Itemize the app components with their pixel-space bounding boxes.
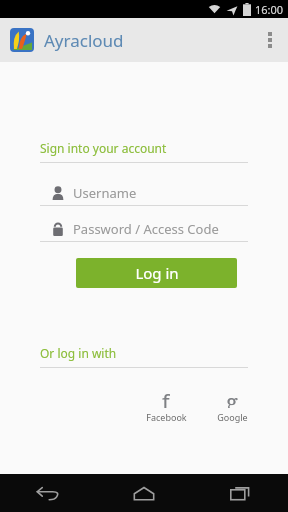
staticText: Ayracloud (44, 29, 124, 52)
staticText: Username (73, 184, 137, 202)
staticText: Password / Access Code (73, 220, 219, 238)
button[interactable]: Recent apps (192, 474, 288, 512)
staticText: Or log in with (40, 345, 117, 361)
button[interactable]: Log in (76, 258, 237, 288)
button[interactable]: More options (252, 22, 288, 58)
staticText: Sign into your account (40, 140, 167, 156)
button[interactable]: g (210, 386, 254, 423)
button[interactable]: f (144, 386, 188, 423)
button[interactable]: Username (40, 181, 248, 206)
staticText: Log in (135, 263, 179, 283)
button[interactable]: Home (96, 474, 192, 512)
staticText: g (226, 386, 238, 408)
button[interactable]: Password / Access Code (40, 217, 248, 242)
staticText: Google (217, 411, 248, 423)
button[interactable]: Back (0, 474, 96, 512)
staticText: 16:00 (255, 2, 284, 17)
staticText: f (162, 386, 170, 408)
staticText: Facebook (146, 411, 187, 423)
